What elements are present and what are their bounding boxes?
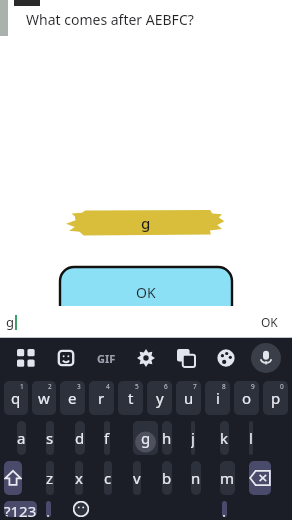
- staticText: n: [191, 468, 201, 488]
- button[interactable]: GIF: [86, 338, 126, 378]
- button[interactable]: i: [205, 381, 230, 415]
- button[interactable]: [249, 461, 271, 495]
- staticText: 8: [222, 382, 226, 391]
- staticText: j: [191, 428, 195, 448]
- button[interactable]: p: [263, 381, 288, 415]
- staticText: r: [98, 388, 105, 408]
- staticText: i: [216, 388, 220, 408]
- staticText: k: [220, 428, 229, 448]
- button[interactable]: h: [162, 421, 172, 455]
- button[interactable]: g: [66, 206, 226, 240]
- staticText: c: [104, 468, 112, 488]
- staticText: z: [46, 468, 54, 488]
- button[interactable]: f: [104, 421, 110, 455]
- staticText: x: [75, 468, 83, 488]
- staticText: 1: [20, 382, 24, 391]
- staticText: 4: [106, 382, 110, 391]
- staticText: t: [128, 388, 134, 408]
- staticText: What comes after AEBFC?: [26, 10, 194, 29]
- button[interactable]: ?123: [4, 501, 37, 517]
- button[interactable]: l: [249, 421, 253, 455]
- staticText: ?123: [4, 501, 37, 517]
- button[interactable]: OK: [60, 267, 232, 327]
- staticText: w: [38, 388, 50, 408]
- staticText: o: [242, 388, 252, 408]
- button[interactable]: .: [222, 501, 227, 517]
- staticText: 7: [193, 382, 197, 391]
- staticText: l: [249, 428, 253, 448]
- button[interactable]: q: [4, 381, 28, 415]
- button[interactable]: Themes: [206, 338, 246, 378]
- button[interactable]: e: [60, 381, 85, 415]
- staticText: 0: [280, 382, 284, 391]
- button[interactable]: b: [162, 461, 172, 495]
- button[interactable]: y: [147, 381, 172, 415]
- button[interactable]: n: [191, 461, 201, 495]
- button[interactable]: Voice input: [246, 338, 286, 378]
- staticText: 6: [164, 382, 168, 391]
- staticText: m: [220, 468, 235, 488]
- button[interactable]: Stickers: [46, 338, 86, 378]
- staticText: d: [75, 428, 85, 448]
- button[interactable]: ,: [46, 501, 51, 517]
- button[interactable]: a: [17, 421, 26, 455]
- staticText: v: [133, 468, 141, 488]
- staticText: GIF: [97, 351, 116, 366]
- button[interactable]: z: [46, 461, 54, 495]
- button[interactable]: Translate: [166, 338, 206, 378]
- staticText: 3: [77, 382, 81, 391]
- staticText: a: [17, 428, 26, 448]
- staticText: h: [162, 428, 172, 448]
- staticText: 2: [48, 382, 52, 391]
- button[interactable]: g: [133, 421, 158, 455]
- staticText: OK: [261, 314, 278, 330]
- button[interactable]: Apps: [6, 338, 46, 378]
- button[interactable]: r: [89, 381, 114, 415]
- button[interactable]: [73, 501, 89, 517]
- button[interactable]: d: [75, 421, 85, 455]
- staticText: .: [222, 501, 227, 517]
- staticText: 5: [135, 382, 139, 391]
- staticText: e: [68, 388, 77, 408]
- staticText: g: [141, 213, 151, 233]
- button[interactable]: w: [32, 381, 56, 415]
- staticText: g: [6, 313, 14, 331]
- staticText: y: [156, 388, 164, 408]
- staticText: b: [162, 468, 172, 488]
- button[interactable]: Settings: [126, 338, 166, 378]
- staticText: 9: [251, 382, 255, 391]
- staticText: OK: [136, 283, 156, 302]
- staticText: u: [184, 388, 194, 408]
- staticText: s: [46, 428, 54, 448]
- staticText: p: [271, 388, 281, 408]
- button[interactable]: x: [75, 461, 83, 495]
- button[interactable]: v: [133, 461, 141, 495]
- staticText: ,: [46, 501, 51, 517]
- button[interactable]: [4, 461, 22, 495]
- button[interactable]: m: [220, 461, 235, 495]
- button[interactable]: j: [191, 421, 195, 455]
- button[interactable]: s: [46, 421, 54, 455]
- staticText: g: [141, 428, 151, 448]
- button[interactable]: c: [104, 461, 112, 495]
- button[interactable]: OK: [253, 310, 286, 334]
- button[interactable]: u: [176, 381, 201, 415]
- button[interactable]: k: [220, 421, 229, 455]
- button[interactable]: t: [118, 381, 143, 415]
- staticText: q: [11, 388, 21, 408]
- staticText: f: [104, 428, 110, 448]
- button[interactable]: o: [234, 381, 259, 415]
